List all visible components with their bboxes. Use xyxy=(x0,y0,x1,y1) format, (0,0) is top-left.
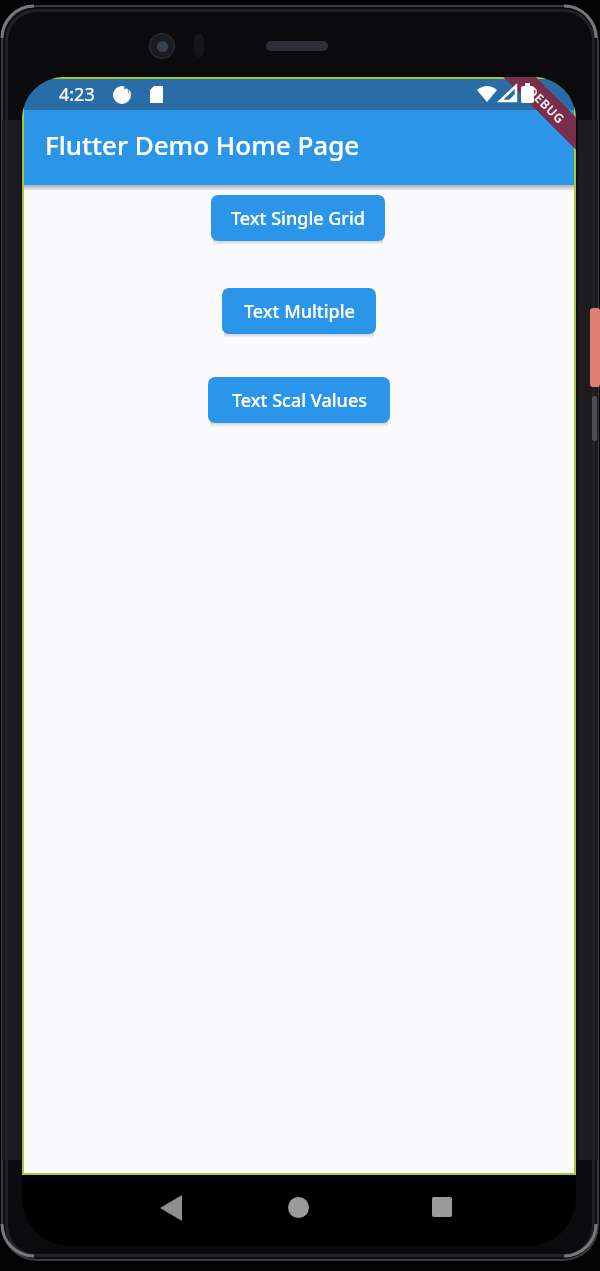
staticText: Flutter Demo Home Page xyxy=(45,127,360,162)
button[interactable]: Text Multiple xyxy=(222,288,376,334)
staticText: Text Multiple xyxy=(244,299,355,324)
button[interactable] xyxy=(288,1197,309,1218)
button[interactable] xyxy=(160,1195,182,1221)
button[interactable]: Text Single Grid xyxy=(211,195,385,241)
staticText: DEBUG xyxy=(525,83,568,127)
staticText: 4:23 xyxy=(59,82,95,107)
button[interactable] xyxy=(432,1197,452,1217)
staticText: Text Single Grid xyxy=(231,206,365,231)
staticText: Text Scal Values xyxy=(232,388,367,413)
button[interactable]: Text Scal Values xyxy=(208,377,390,423)
